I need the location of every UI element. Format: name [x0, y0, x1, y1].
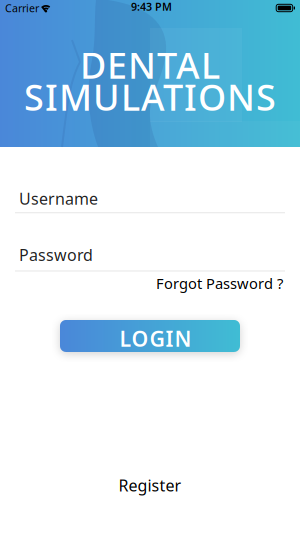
staticText: SIMULATIONS — [24, 73, 276, 121]
staticText: LOGIN — [119, 324, 191, 353]
button[interactable]: Forgot Password ? — [156, 273, 283, 293]
button[interactable]: Password — [0, 244, 300, 271]
staticText: DENTAL — [80, 41, 220, 89]
staticText: Forgot Password ? — [156, 273, 283, 293]
staticText: Carrier — [5, 1, 39, 15]
staticText: 9:43 PM — [131, 0, 172, 14]
staticText: Password — [19, 244, 93, 265]
staticText: Register — [118, 475, 181, 496]
button[interactable]: Register — [118, 475, 181, 496]
button[interactable]: Username — [0, 188, 300, 213]
staticText: Username — [19, 188, 98, 209]
button[interactable]: LOGIN — [60, 320, 240, 352]
